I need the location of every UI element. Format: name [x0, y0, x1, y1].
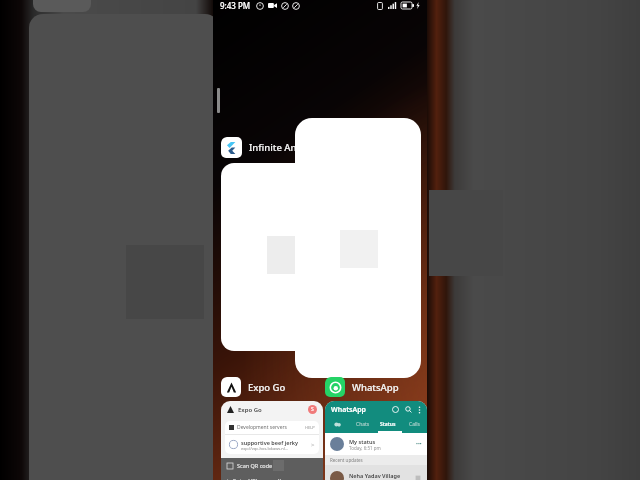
button[interactable]: Calls [401, 418, 427, 431]
staticText: Status [380, 421, 396, 428]
other: WhatsApp app icon [325, 377, 345, 397]
staticText: Enter URL manually [233, 477, 284, 480]
staticText: Development servers [237, 424, 287, 431]
staticText: supportive beef jerky [241, 439, 299, 446]
staticText: Neha Yadav Village [349, 472, 401, 479]
button[interactable]: Status [375, 418, 401, 431]
staticText: Calls [409, 421, 420, 428]
staticText: Scan QR code [237, 462, 273, 469]
staticText: ••• [416, 441, 422, 448]
staticText: Expo Go [248, 381, 286, 394]
button[interactable]: Neha Yadav Village [330, 465, 422, 480]
staticText: > [311, 441, 315, 449]
button[interactable] [221, 163, 331, 351]
staticText: › [227, 476, 229, 480]
button[interactable]: WhatsApp [325, 401, 427, 480]
staticText: Infinite Animation [249, 141, 332, 154]
button[interactable]: Expo Go [221, 401, 323, 480]
button[interactable]: Infinite Animation app icon [221, 137, 376, 171]
staticText: Expo Go [238, 406, 262, 414]
staticText: Recent updates [330, 457, 363, 463]
button[interactable]: My status [330, 433, 422, 455]
staticText: HELP [305, 425, 315, 430]
staticText: 9:43 PM [220, 0, 251, 11]
button[interactable] [295, 118, 421, 378]
staticText: S [311, 406, 314, 413]
staticText: Chats [356, 421, 370, 428]
staticText: WhatsApp [352, 381, 399, 394]
button[interactable]: Chats [350, 418, 375, 431]
button[interactable]: WhatsApp app icon [325, 377, 425, 401]
other: Expo Go app icon [221, 377, 241, 397]
staticText: exp://vqc-hos.lokaws.nl... [241, 446, 289, 451]
staticText: Today, 6:51 pm [349, 445, 381, 451]
other: Infinite Animation app icon [221, 137, 242, 158]
button[interactable]: Expo Go app icon [221, 377, 321, 401]
staticText: My status [349, 438, 376, 445]
button[interactable] [325, 418, 350, 431]
staticText: WhatsApp [331, 405, 366, 415]
